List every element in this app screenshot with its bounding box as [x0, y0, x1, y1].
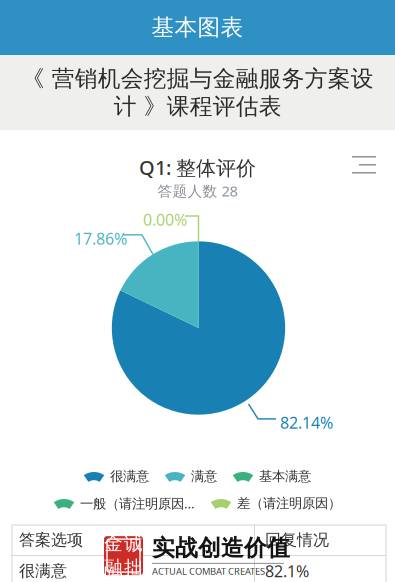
staticText: 答案选项 [19, 530, 83, 550]
staticText: 0.00% [143, 209, 187, 230]
button[interactable]: 很满意 [84, 468, 149, 484]
staticText: 回复情况 [265, 530, 329, 550]
staticText: 17.86% [74, 228, 127, 249]
button[interactable]: Chart options [352, 153, 386, 179]
staticText: 一般（请注明原因… [80, 494, 195, 512]
staticText: 82.14% [280, 412, 333, 433]
staticText: 很满意 [19, 561, 67, 581]
staticText: 差（请注明原因） [237, 495, 341, 511]
staticText: 金 [104, 532, 123, 555]
staticText: 答题人数 28 [157, 181, 237, 200]
button[interactable]: 满意 [165, 468, 217, 484]
staticText: 《 营销机会挖掘与金融服务方案设 计 》课程评估表 [21, 65, 373, 120]
staticText: 82.1% [265, 560, 309, 582]
staticText: Q1: 整体评价 [139, 154, 256, 181]
staticText: 基本满意 [259, 468, 311, 484]
staticText: 满意 [191, 468, 217, 484]
staticText: 实战创造价值 [152, 534, 290, 562]
staticText: 基本图表 [151, 14, 243, 41]
button[interactable]: 差（请注明原因） [211, 495, 341, 511]
staticText: 拙 [124, 556, 143, 579]
staticText: 诚 [124, 532, 143, 555]
staticText: ACTUAL COMBAT CREATES [152, 565, 265, 577]
staticText: 很满意 [110, 468, 149, 484]
button[interactable]: 基本满意 [233, 468, 311, 484]
staticText: 融 [104, 556, 123, 579]
button[interactable]: 一般（请注明原因… [54, 494, 195, 512]
